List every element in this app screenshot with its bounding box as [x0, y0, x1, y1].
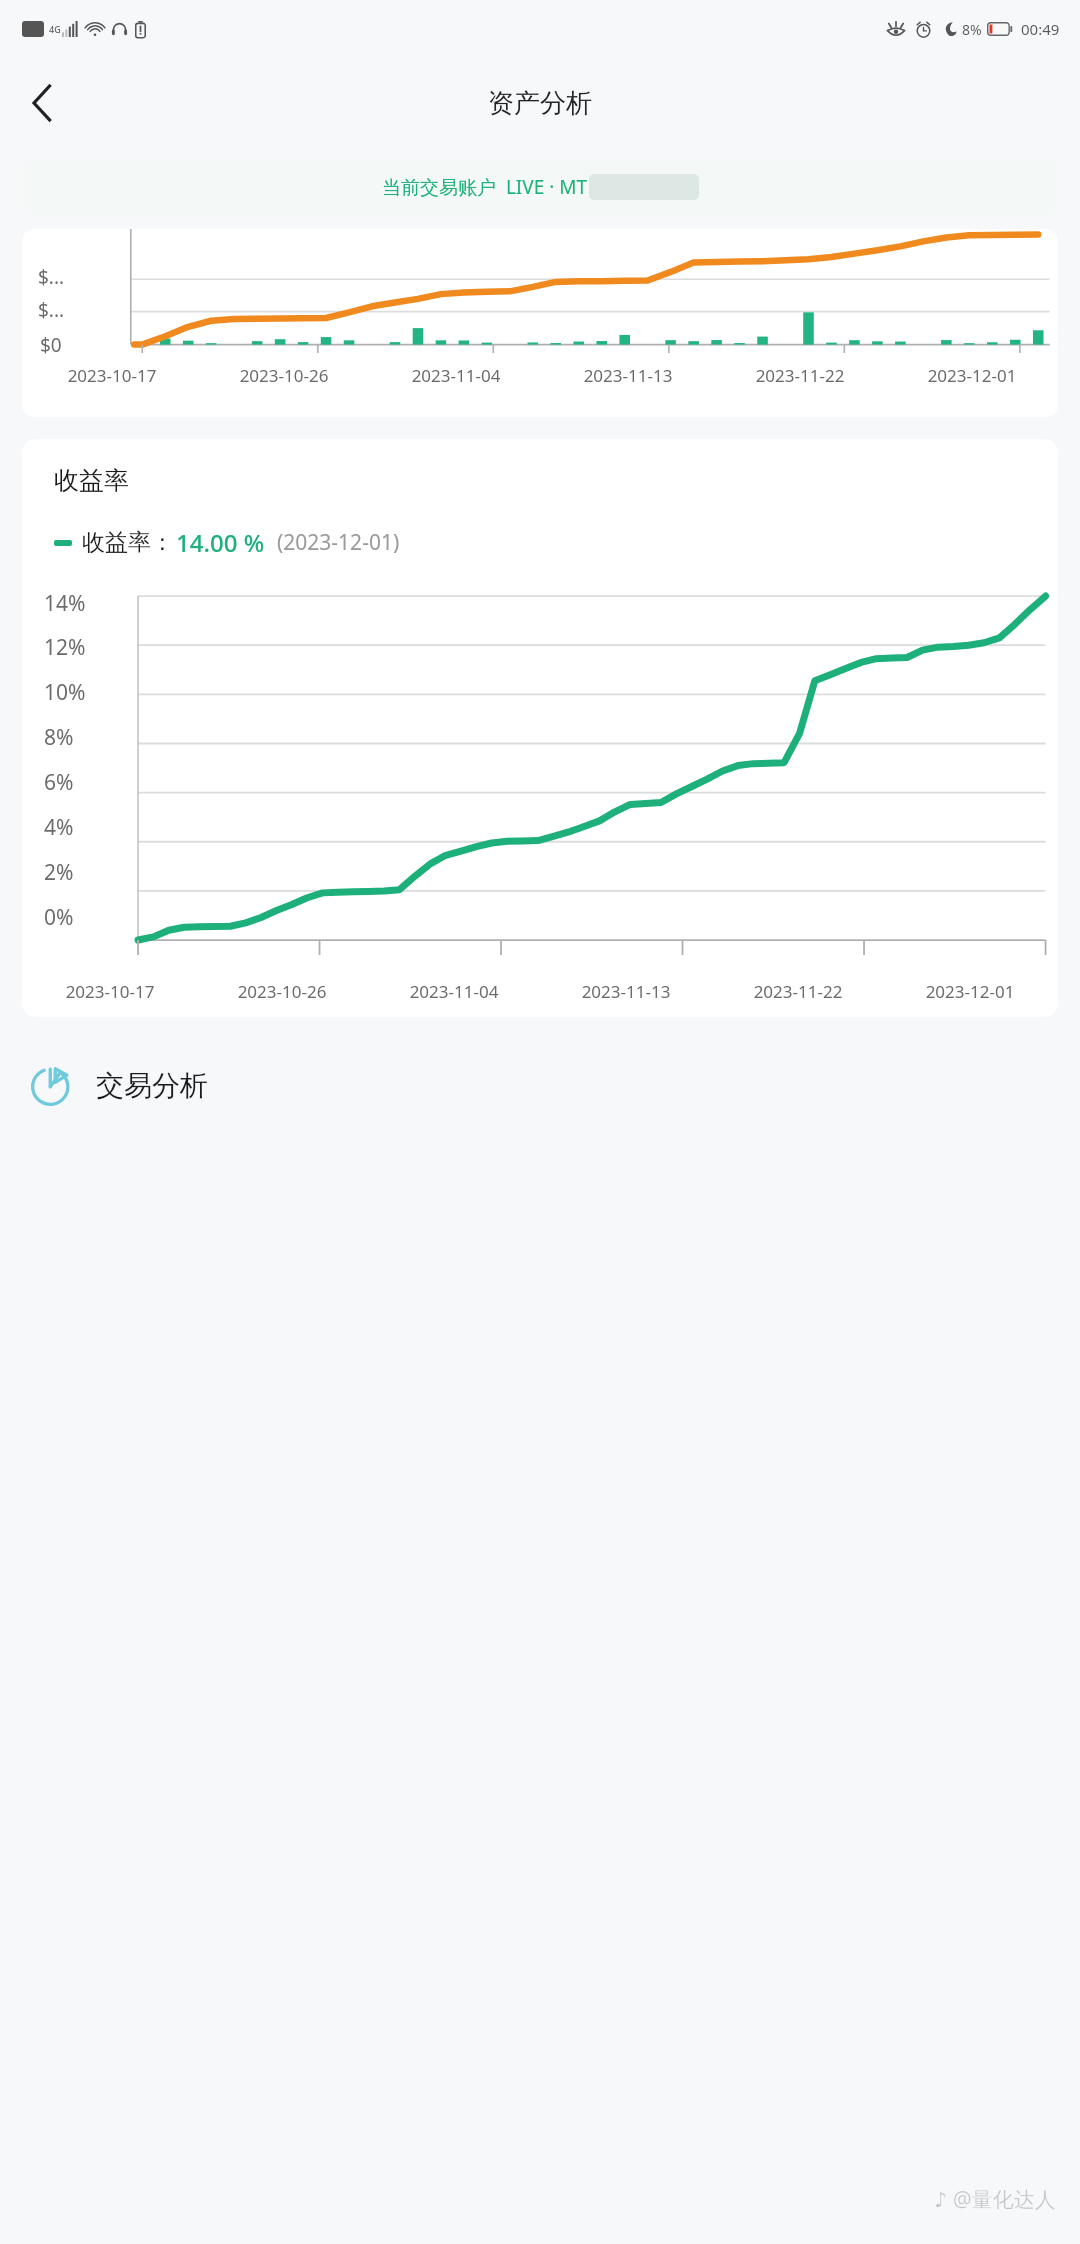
- button[interactable]: 当前交易账户 LIVE · MT: [24, 159, 1056, 215]
- staticText: 4G: [49, 23, 61, 35]
- staticText: 2023-11-04: [368, 980, 540, 1003]
- staticText: 资产分析: [488, 87, 592, 120]
- staticText: 收益率：: [82, 528, 174, 557]
- staticText: $...: [38, 264, 65, 290]
- staticText: 4%: [44, 813, 74, 842]
- button[interactable]: Back: [14, 75, 70, 131]
- staticText: 2023-10-26: [196, 980, 368, 1003]
- staticText: 2023-10-17: [24, 980, 196, 1003]
- staticText: 2023-11-22: [712, 980, 884, 1003]
- staticText: 14%: [44, 589, 86, 618]
- staticText: 8%: [44, 723, 74, 752]
- staticText: 00:49: [1021, 19, 1060, 39]
- staticText: (2023-12-01): [277, 528, 400, 557]
- staticText: 2023-10-17: [26, 364, 198, 387]
- staticText: 2023-12-01: [884, 980, 1056, 1003]
- staticText: 14.00 %: [176, 526, 265, 559]
- staticText: 2023-11-13: [540, 980, 712, 1003]
- staticText: 2023-11-13: [542, 364, 714, 387]
- button[interactable]: 收益率: [22, 439, 1058, 1017]
- button[interactable]: $0: [22, 229, 1058, 417]
- staticText: 2%: [44, 858, 74, 887]
- staticText: 收益率: [54, 465, 129, 496]
- staticText: $0: [40, 332, 62, 358]
- staticText: 2023-11-22: [714, 364, 886, 387]
- staticText: 2023-12-01: [886, 364, 1058, 387]
- staticText: 2023-10-26: [198, 364, 370, 387]
- staticText: 12%: [44, 633, 86, 662]
- staticText: ♪ @量化达人: [934, 2185, 1056, 2214]
- staticText: $...: [38, 297, 65, 323]
- staticText: 8%: [962, 20, 982, 39]
- staticText: 当前交易账户 LIVE · MT: [382, 174, 588, 200]
- staticText: 6%: [44, 768, 74, 797]
- staticText: 0%: [44, 903, 74, 932]
- staticText: 2023-11-04: [370, 364, 542, 387]
- staticText: 交易分析: [96, 1068, 208, 1103]
- button[interactable]: 交易分析: [30, 1053, 1056, 1117]
- staticText: 10%: [44, 678, 86, 707]
